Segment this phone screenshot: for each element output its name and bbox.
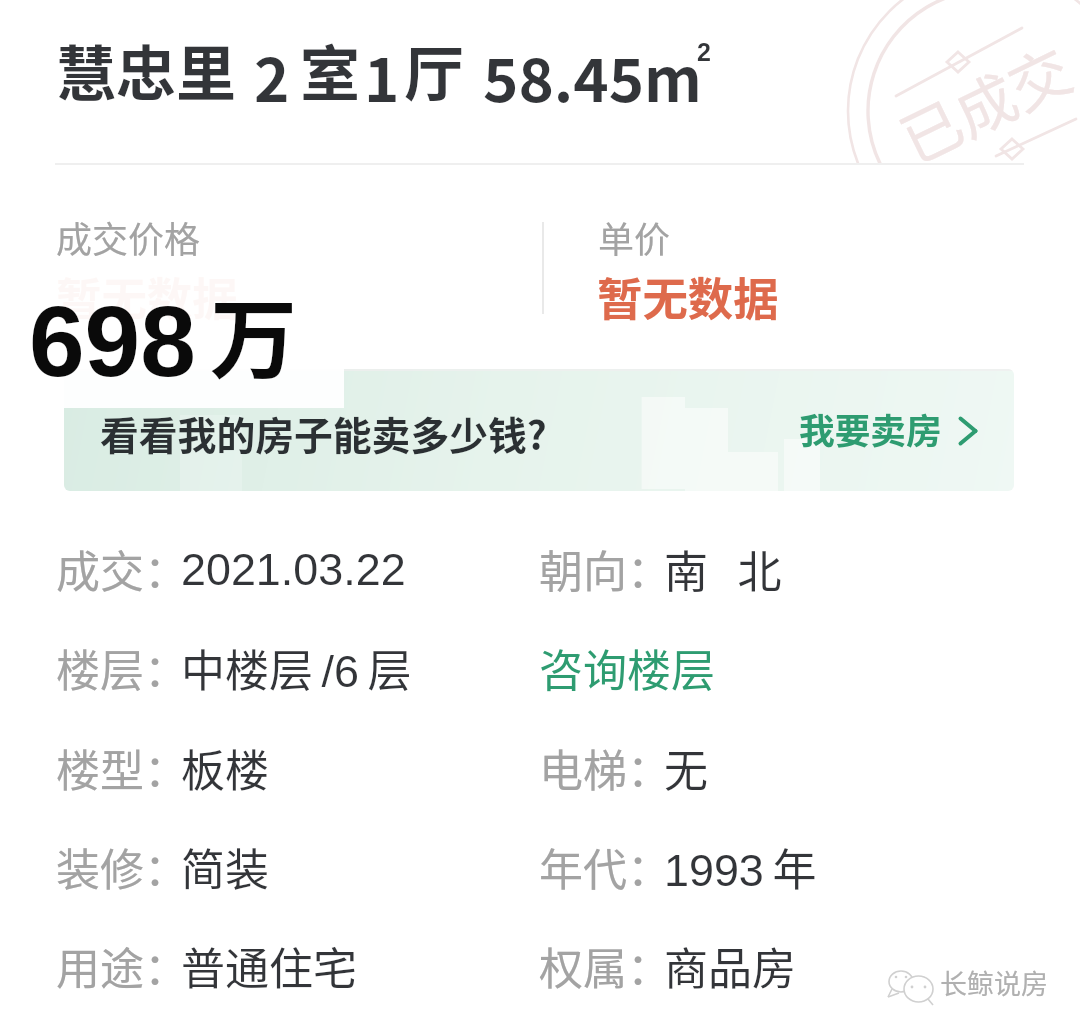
staticText: 商品房 — [664, 934, 796, 998]
staticText: 简装 — [181, 835, 269, 899]
button[interactable]: 咨询楼层 — [539, 636, 715, 700]
staticText: 板楼 — [181, 736, 269, 800]
staticText: 权属： — [539, 934, 671, 998]
staticText: 暂无数据 — [597, 263, 779, 329]
other: WeChat official account — [888, 968, 936, 1002]
staticText: 南 北 — [664, 537, 782, 601]
staticText: 楼型： — [56, 736, 188, 800]
staticText: 2 — [697, 38, 711, 66]
staticText: 楼层： — [56, 636, 188, 700]
staticText: 年代： — [539, 835, 671, 899]
staticText: 电梯： — [539, 736, 671, 800]
staticText: 厅 — [404, 26, 464, 113]
staticText: 普通住宅 — [181, 934, 357, 998]
button[interactable]: 我要卖房 — [790, 400, 990, 462]
staticText: 698 — [29, 285, 196, 397]
staticText: 室 — [300, 26, 360, 113]
staticText: 成交价格 — [56, 211, 201, 263]
staticText: 已成交 — [884, 23, 1080, 164]
staticText: 1 — [364, 32, 400, 119]
staticText: 慧忠里 — [56, 26, 236, 113]
staticText: 用途： — [56, 934, 188, 998]
staticText: 暂无数据 — [56, 263, 238, 329]
staticText: 看看我的房子能卖多少钱? — [100, 405, 547, 461]
staticText: 我要卖房 — [799, 403, 942, 455]
staticText: 2021.03.22 — [181, 544, 406, 594]
staticText: 58.45m — [483, 32, 702, 119]
staticText: 成交： — [56, 537, 188, 601]
staticText: 装修： — [56, 835, 188, 899]
staticText: 朝向： — [539, 537, 671, 601]
staticText: 万 — [210, 271, 297, 397]
staticText: 1993 年 — [664, 835, 817, 899]
staticText: 2 — [254, 32, 290, 119]
staticText: 单价 — [598, 211, 671, 263]
staticText: 长鲸说房 — [940, 963, 1048, 1002]
button[interactable] — [64, 369, 1014, 491]
staticText: 无 — [664, 736, 708, 800]
staticText: 中楼层 /6 层 — [181, 636, 412, 700]
